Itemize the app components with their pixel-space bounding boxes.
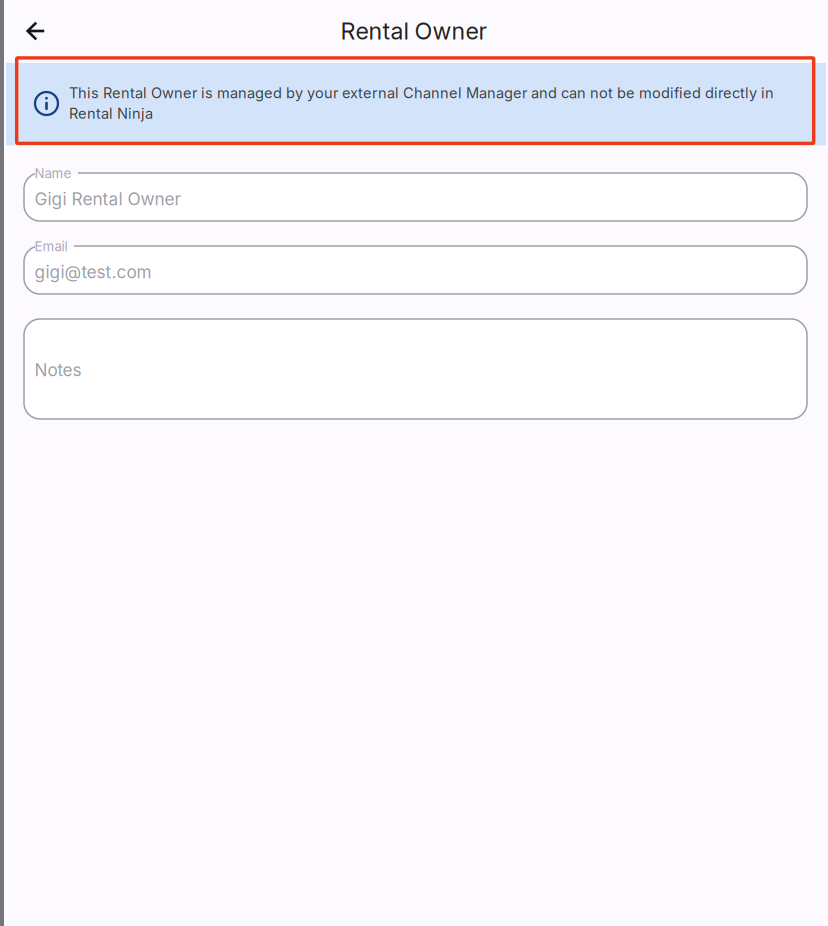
button[interactable]: Name <box>24 173 807 221</box>
staticText: gigi@test.com <box>35 262 152 282</box>
staticText: Email <box>34 238 67 254</box>
button[interactable]: Email <box>24 246 807 294</box>
staticText: Name <box>34 165 71 181</box>
button[interactable]: Back <box>10 5 62 57</box>
staticText: This Rental Owner is managed by your ext… <box>69 84 774 122</box>
staticText: Gigi Rental Owner <box>35 189 181 209</box>
staticText: Notes <box>35 360 82 380</box>
staticText: Rental Owner <box>340 17 487 45</box>
button[interactable]: Notes <box>24 319 807 419</box>
